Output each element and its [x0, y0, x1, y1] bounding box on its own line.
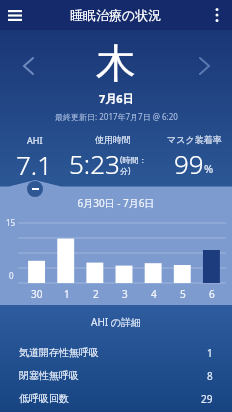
button[interactable]: 使用時間 — [69, 134, 156, 180]
staticText: (時間：分) — [120, 154, 156, 176]
staticText: 99 — [174, 146, 204, 180]
staticText: AHI の詳細 — [0, 315, 232, 329]
button[interactable]: Previous day — [14, 52, 42, 80]
staticText: 1 — [64, 287, 70, 301]
staticText: 15 — [6, 217, 16, 228]
staticText: 6 — [209, 287, 215, 301]
staticText: 1 — [207, 346, 213, 360]
staticText: 4 — [151, 287, 157, 301]
staticText: 閉塞性無呼吸 — [19, 369, 79, 382]
staticText: % — [204, 161, 214, 176]
staticText: 5 — [180, 287, 186, 301]
staticText: マスク装着率 — [167, 134, 222, 145]
staticText: 気道開存性無呼吸 — [19, 346, 99, 359]
staticText: 木 — [96, 38, 136, 88]
staticText: 8 — [207, 369, 213, 383]
staticText: 3 — [122, 287, 128, 301]
staticText: AHI — [27, 134, 43, 146]
staticText: 29 — [201, 392, 213, 406]
button[interactable]: マスク装着率 — [156, 134, 232, 180]
button[interactable]: 低呼吸回数 — [0, 387, 232, 410]
staticText: 睡眠治療の状況 — [70, 7, 162, 23]
button[interactable]: AHI — [0, 134, 69, 180]
staticText: 7月6日 — [99, 91, 134, 106]
button[interactable]: Collapse — [27, 181, 43, 197]
staticText: 2 — [93, 287, 99, 301]
staticText: 最終更新日: 2017年7月7日 @ 6:20 — [55, 111, 178, 122]
staticText: 5:23 — [69, 146, 120, 180]
button[interactable]: 閉塞性無呼吸 — [0, 364, 232, 387]
staticText: 6月30日 - 7月6日 — [0, 196, 232, 210]
button[interactable]: Next day — [190, 52, 218, 80]
staticText: 0 — [9, 270, 14, 281]
button[interactable]: Menu — [0, 0, 30, 30]
staticText: 7.1 — [16, 147, 53, 180]
staticText: 低呼吸回数 — [19, 392, 69, 405]
staticText: 使用時間 — [95, 134, 131, 145]
button[interactable]: 気道開存性無呼吸 — [0, 341, 232, 364]
button[interactable]: More options — [202, 0, 232, 30]
staticText: 30 — [31, 287, 43, 301]
